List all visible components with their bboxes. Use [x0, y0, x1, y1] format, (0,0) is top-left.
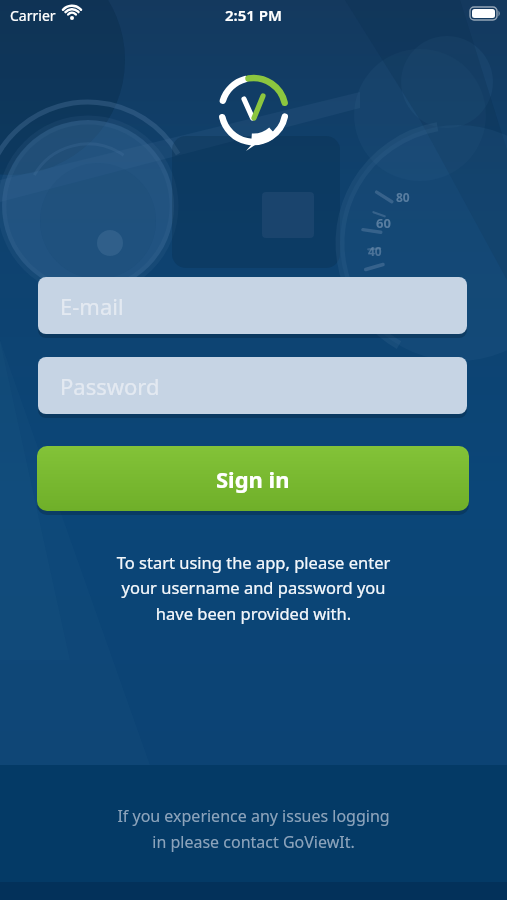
staticText: 60 — [376, 214, 391, 232]
staticText: To start using the app, please enter you… — [0, 551, 507, 625]
staticText: Sign in — [216, 464, 290, 494]
button[interactable]: Password — [38, 357, 467, 414]
button[interactable]: E-mail — [38, 277, 467, 334]
button[interactable]: Sign in — [37, 446, 469, 511]
staticText: If you experience any issues logging in … — [0, 805, 507, 853]
staticText: 2:51 PM — [0, 5, 507, 25]
staticText: Carrier — [10, 6, 56, 25]
staticText: Password — [60, 371, 160, 401]
staticText: 80 — [396, 189, 410, 205]
staticText: E-mail — [60, 291, 124, 321]
staticText: 40 — [368, 243, 382, 259]
